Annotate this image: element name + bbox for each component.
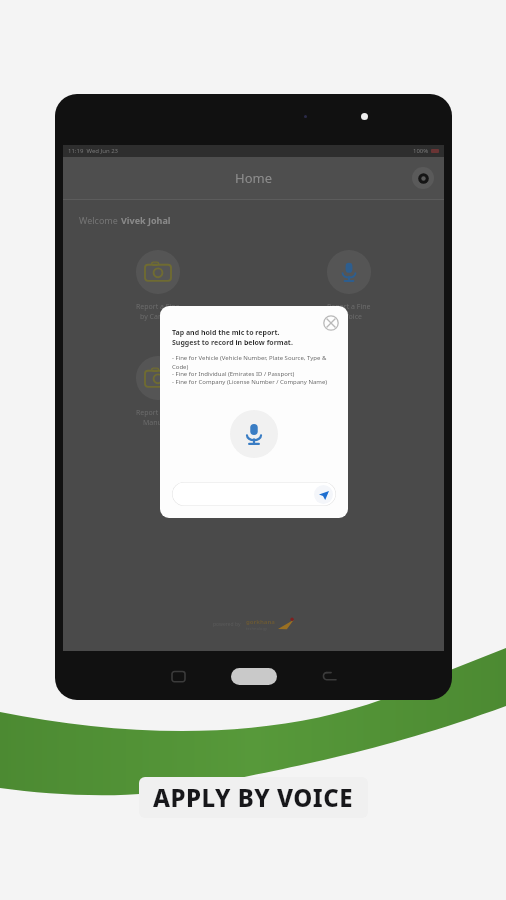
button[interactable]: Close: [320, 312, 342, 334]
staticText: by Camera: [140, 312, 176, 322]
staticText: 11:19 Wed Jun 23: [68, 147, 119, 155]
staticText: Tap and hold the mic to report.: [172, 328, 280, 338]
staticText: Welcome: [79, 214, 121, 226]
staticText: - Fine for Vehicle (Vehicle Number, Plat…: [172, 354, 336, 370]
staticText: Suggest to record in below format.: [172, 338, 293, 348]
staticText: by Voice: [335, 312, 362, 322]
button[interactable]: Send: [172, 482, 336, 506]
button[interactable]: Settings: [412, 167, 434, 189]
staticText: 100%: [413, 147, 429, 155]
button[interactable]: Recents: [167, 665, 189, 687]
staticText: Report a Fine: [136, 408, 180, 418]
staticText: Home: [235, 169, 272, 187]
staticText: powered by: [213, 621, 241, 628]
button[interactable]: Back: [318, 665, 340, 687]
button[interactable]: Record voice: [230, 410, 278, 458]
staticText: - Fine for Company (License Number / Com…: [172, 378, 328, 386]
staticText: APPLY BY VOICE: [153, 781, 354, 814]
staticText: Report a Fine: [327, 302, 371, 312]
staticText: Vivek Johal: [121, 214, 171, 226]
button[interactable]: Report a Fine: [63, 352, 253, 432]
staticText: Report a Fine: [136, 302, 180, 312]
staticText: gorkhana: [246, 618, 275, 626]
staticText: Manually: [143, 418, 174, 428]
button[interactable]: Report a Fine: [63, 246, 253, 326]
button[interactable]: Send: [314, 485, 333, 504]
button[interactable]: Report a Fine: [253, 246, 444, 326]
button[interactable]: Home: [231, 668, 277, 685]
staticText: - Fine for Individual (Emirates ID / Pas…: [172, 370, 295, 378]
